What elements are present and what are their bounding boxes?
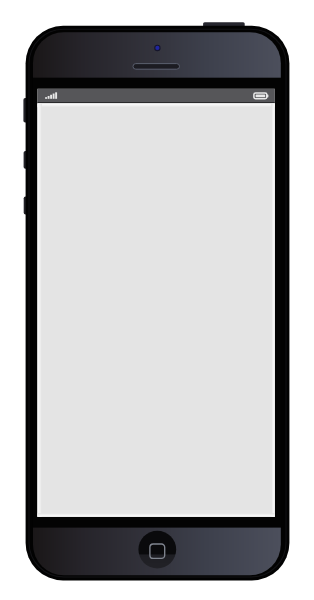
button[interactable]: Volume up xyxy=(22,151,31,169)
button[interactable]: Earpiece speaker xyxy=(133,64,180,70)
button[interactable]: Silent switch xyxy=(22,98,31,123)
button[interactable]: Volume down xyxy=(22,197,31,215)
button[interactable]: Phone screen xyxy=(37,89,274,517)
button[interactable]: Power button xyxy=(203,22,245,31)
button[interactable]: Home button xyxy=(138,531,176,569)
